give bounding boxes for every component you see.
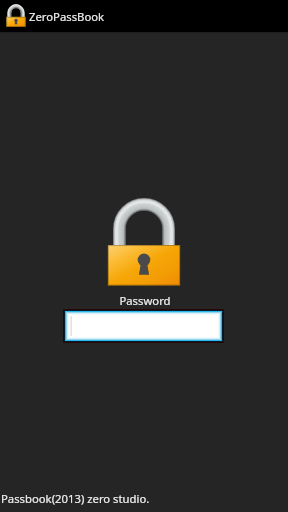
staticText: Password <box>1 293 288 308</box>
button[interactable] <box>63 309 224 343</box>
other: ZeroPassBook app icon <box>6 5 26 27</box>
button[interactable]: ZeroPassBook app icon <box>0 0 288 32</box>
staticText: Passbook(2013) zero studio. <box>1 491 150 506</box>
staticText: ZeroPassBook <box>29 9 105 24</box>
other: Locked padlock <box>107 198 181 286</box>
